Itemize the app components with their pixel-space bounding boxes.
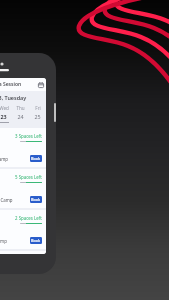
button[interactable]: Thu [12,105,29,123]
staticText: 23 [0,113,7,120]
button[interactable]: Book [30,237,42,244]
button[interactable]: Calendar [37,81,45,89]
staticText: 3 Spaces Left [15,133,42,139]
button[interactable]: Wed [0,105,12,123]
button[interactable]: 2 Spaces Left [0,210,46,249]
staticText: Book [31,238,41,243]
button[interactable]: 5 Spaces Left [0,169,46,208]
staticText: 25 [34,113,41,120]
staticText: Thu [16,105,25,111]
staticText: Fri [35,105,41,111]
staticText: Boxing Camp [0,197,13,203]
staticText: HIIT Camp [0,238,7,244]
staticText: 2 Spaces Left [15,215,42,221]
staticText: Book [31,197,41,202]
button[interactable]: Fri [29,105,46,123]
button[interactable]: 3 Spaces Left [0,128,46,167]
button[interactable]: Book [30,196,42,203]
staticText: 5 Spaces Left [15,174,42,180]
button[interactable]: 8 Spaces Left [0,251,46,254]
staticText: Book a Session [0,81,22,88]
staticText: Oct 23, Tuesday [0,94,27,101]
staticText: 24 [17,113,24,120]
staticText: Book [31,156,41,161]
staticText: Wed [0,105,9,111]
button[interactable]: Book [30,155,42,162]
staticText: Boot Camp [0,156,8,162]
